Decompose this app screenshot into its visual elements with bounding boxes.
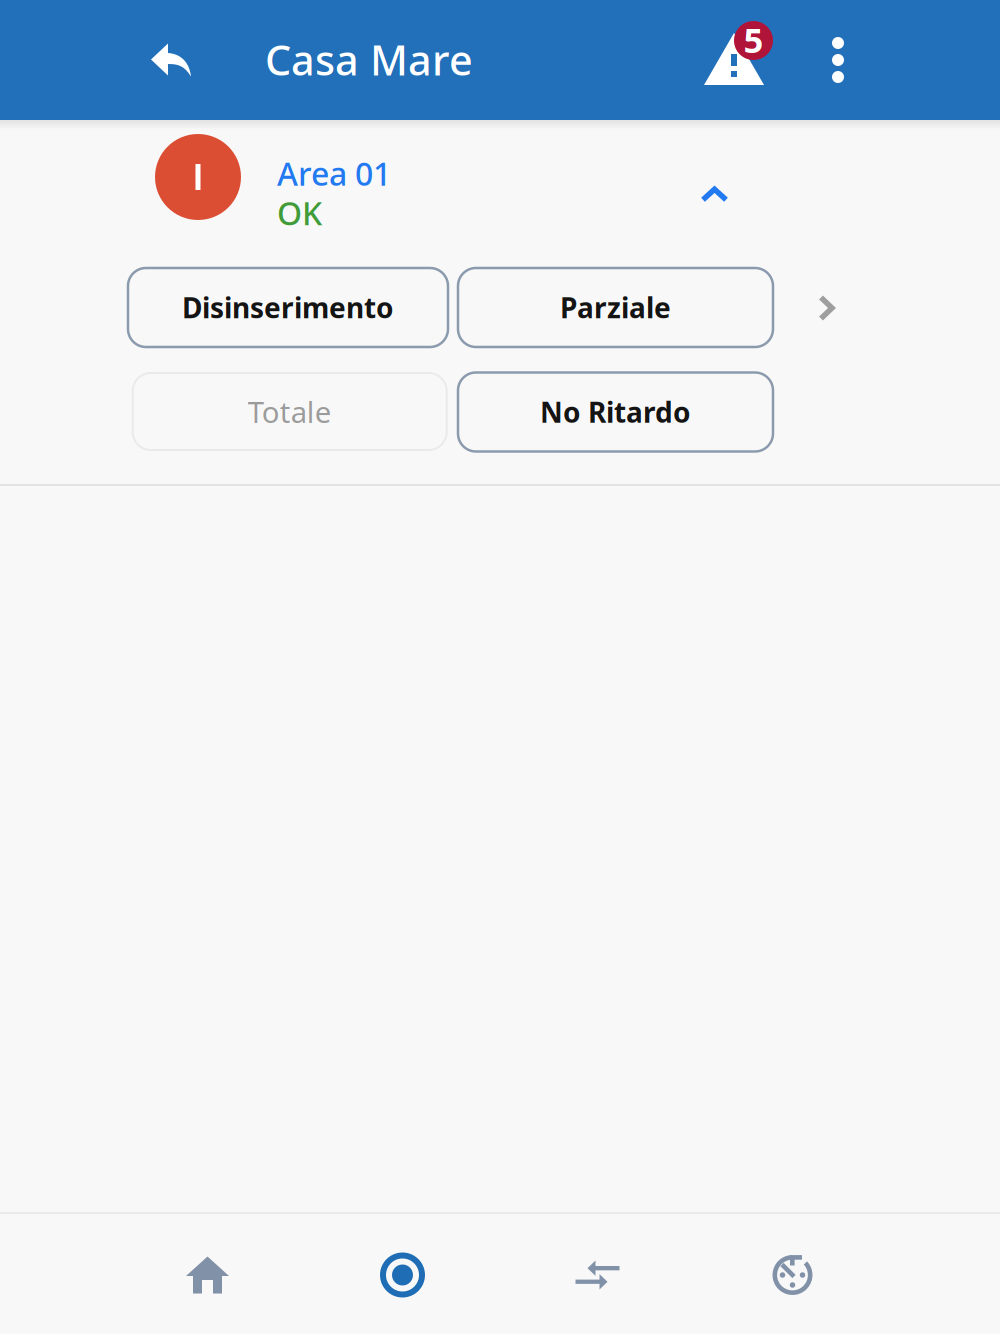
staticText: 5 xyxy=(743,16,763,62)
button[interactable]: Area details xyxy=(786,268,866,348)
staticText: No Ritardo xyxy=(540,393,691,431)
staticText: Parziale xyxy=(560,289,671,326)
button[interactable]: Collapse area xyxy=(671,154,757,234)
button[interactable]: Home xyxy=(110,1214,305,1334)
tabGroup xyxy=(0,1214,1000,1334)
button[interactable]: Back xyxy=(121,0,221,120)
button[interactable]: Areas xyxy=(305,1214,500,1334)
button[interactable]: Area 01 xyxy=(155,131,685,223)
button[interactable]: Totale xyxy=(133,373,447,450)
button[interactable]: Disinserimento xyxy=(128,268,448,347)
staticText: Disinserimento xyxy=(182,289,394,326)
button[interactable]: Inputs and outputs xyxy=(500,1214,695,1334)
staticText: OK xyxy=(277,191,322,234)
staticText: Casa Mare xyxy=(265,32,473,87)
button[interactable]: Parziale xyxy=(458,268,773,347)
staticText: Area 01 xyxy=(277,152,391,194)
navigationBar: Casa Mare xyxy=(0,0,1000,120)
button[interactable]: More options xyxy=(793,0,883,120)
button[interactable]: No Ritardo xyxy=(458,372,773,451)
button[interactable]: Alerts, 5 new xyxy=(700,0,800,120)
staticText: Totale xyxy=(248,392,332,431)
button[interactable]: History xyxy=(695,1214,890,1334)
